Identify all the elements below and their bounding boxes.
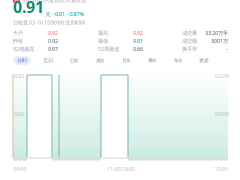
staticText: 52周最低 — [98, 45, 119, 53]
button[interactable]: 月K — [117, 56, 135, 65]
staticText: 11:30/13:00 — [107, 165, 135, 173]
staticText: -0.87% — [67, 10, 83, 17]
staticText: 成交额 — [182, 38, 197, 44]
staticText: 最高 — [98, 30, 108, 36]
staticText: 0.91 — [13, 0, 44, 17]
staticText: -0.01 — [53, 10, 65, 17]
staticText: 0.66 — [133, 45, 143, 53]
button[interactable]: 更多 — [195, 56, 213, 65]
staticText: 月K — [122, 57, 130, 64]
staticText: 更多 — [199, 57, 209, 64]
staticText: 09:30 — [13, 165, 26, 173]
button[interactable]: 年K — [169, 56, 187, 65]
staticText: 3001万 — [211, 37, 228, 45]
staticText: 换手率 — [182, 46, 197, 52]
staticText: 最低 — [98, 38, 108, 44]
staticText: 今开 — [13, 30, 23, 36]
staticText: 元 — [45, 11, 50, 17]
button[interactable]: 日K — [65, 56, 83, 65]
staticText: - — [226, 45, 228, 53]
staticText: 33.20万手 — [205, 29, 228, 37]
staticText: 0.92 — [48, 29, 58, 37]
staticText: 周K — [96, 57, 104, 64]
staticText: 0.92 — [48, 37, 58, 45]
button[interactable]: 五日 — [39, 56, 57, 65]
staticText: 0.92 — [14, 72, 24, 80]
staticText: 0.92 — [133, 29, 143, 37]
staticText: 日收盘 03-10 15:00:00 北京时间 — [13, 19, 85, 26]
staticText: 15:00 — [214, 165, 227, 173]
staticText: 基 — [14, 0, 19, 4]
staticText: 0.91 — [133, 37, 143, 45]
staticText: 成交量 — [182, 30, 197, 36]
staticText: 0.00% — [215, 110, 229, 118]
staticText: 52周最高 — [13, 45, 34, 53]
staticText: 0.22% — [215, 72, 229, 80]
button[interactable]: 周K — [91, 56, 109, 65]
staticText: 日K — [70, 57, 78, 64]
staticText: 510310 · 沪深300ETF易方达 — [22, 0, 86, 4]
staticText: 0.92 — [14, 110, 24, 118]
staticText: 0.97 — [48, 45, 58, 53]
staticText: 五日 — [43, 57, 53, 64]
staticText: 分时 — [17, 57, 27, 64]
button[interactable]: 分时 — [13, 56, 31, 65]
button[interactable]: 季K — [143, 56, 161, 65]
staticText: 昨收 — [13, 38, 23, 44]
staticText: 年K — [174, 57, 182, 64]
staticText: 季K — [148, 57, 156, 64]
